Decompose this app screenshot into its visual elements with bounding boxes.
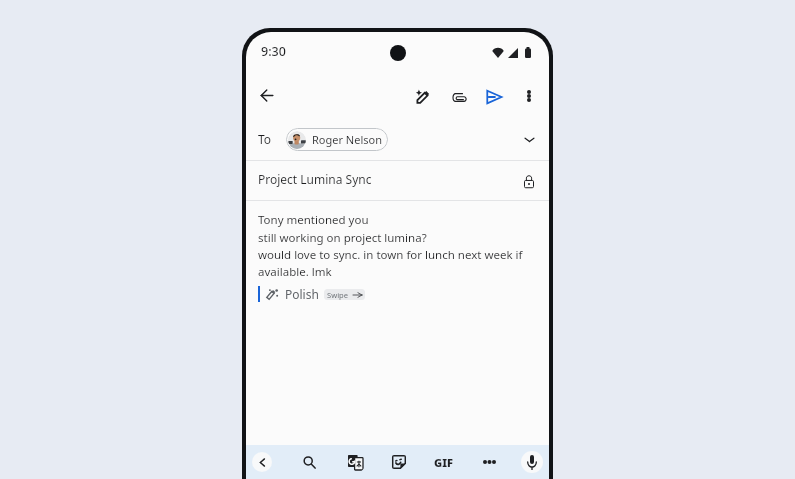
button[interactable]: More options xyxy=(515,82,543,110)
button[interactable]: GIF xyxy=(432,454,454,470)
button[interactable]: Attach file xyxy=(445,83,473,111)
staticText: Polish xyxy=(285,286,319,302)
staticText: Tony mentioned you still working on proj… xyxy=(258,212,523,279)
staticText: Roger Nelson xyxy=(312,132,382,147)
button[interactable]: Voice input xyxy=(521,451,543,473)
button[interactable]: Swipe xyxy=(324,289,365,300)
staticText: Swipe xyxy=(327,290,349,300)
button[interactable]: Back xyxy=(252,81,281,110)
button[interactable]: Back xyxy=(252,452,272,472)
button[interactable]: Translate xyxy=(344,451,366,473)
staticText: 9:30 xyxy=(261,43,286,60)
staticText: To xyxy=(258,131,272,147)
button[interactable]: Message body xyxy=(246,201,549,444)
button[interactable]: Polish draft xyxy=(409,83,437,111)
button[interactable]: Expand recipients xyxy=(516,126,542,152)
staticText: Project Lumina Sync xyxy=(258,171,372,187)
button[interactable]: Stickers xyxy=(388,451,410,473)
button[interactable]: Search xyxy=(298,451,320,473)
button[interactable]: Roger Nelson xyxy=(286,128,388,151)
button[interactable]: Send xyxy=(480,83,508,111)
button[interactable]: Encryption xyxy=(516,168,542,194)
staticText: GIF xyxy=(434,455,453,470)
button[interactable]: Recipients field xyxy=(246,120,549,159)
button[interactable]: Subject field xyxy=(246,161,549,200)
button[interactable]: More xyxy=(478,451,500,473)
